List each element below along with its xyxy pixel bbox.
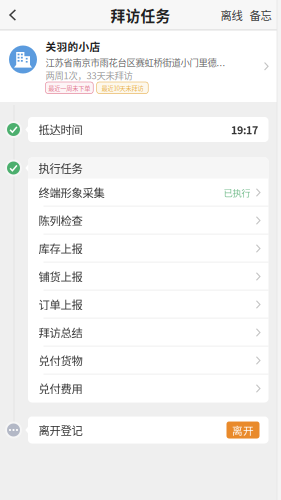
button[interactable]: 兑付费用 (28, 374, 268, 402)
staticText: 抵达时间 (38, 121, 82, 138)
button[interactable]: 兑付货物 (28, 346, 268, 374)
button[interactable]: 关羽的小店 (0, 31, 281, 102)
button[interactable]: 陈列检查 (28, 206, 268, 234)
staticText: 铺货上报 (38, 268, 82, 285)
staticText: 离开 (232, 422, 254, 438)
button[interactable]: 铺货上报 (28, 262, 268, 290)
button[interactable]: 离线 (217, 0, 246, 30)
staticText: 订单上报 (38, 296, 82, 313)
staticText: 最近一周未下单 (48, 83, 90, 92)
staticText: 已执行 (223, 186, 250, 199)
button[interactable]: 终端形象采集 (28, 178, 268, 206)
staticText: 终端形象采集 (38, 184, 104, 201)
staticText: 库存上报 (38, 240, 82, 257)
staticText: 19:17 (231, 122, 258, 137)
button[interactable]: 订单上报 (28, 290, 268, 318)
staticText: 拜访任务 (110, 4, 170, 26)
button[interactable]: 拜访总结 (28, 318, 268, 346)
staticText: 兑付货物 (38, 352, 82, 369)
staticText: 最近10天未拜访 (101, 83, 143, 92)
button[interactable]: 库存上报 (28, 234, 268, 262)
staticText: 离开登记 (38, 422, 82, 438)
staticText: 兑付费用 (38, 380, 82, 397)
button[interactable]: 离开 (226, 421, 259, 438)
staticText: 执行任务 (38, 160, 82, 176)
staticText: 备忘 (249, 7, 271, 23)
staticText: 两周1次，33天未拜访 (45, 68, 132, 82)
staticText: 江苏省南京市雨花台区赛虹桥街道小门里德... (45, 55, 225, 69)
button[interactable]: 备忘 (246, 0, 275, 30)
staticText: 陈列检查 (38, 212, 82, 229)
button[interactable]: 返回 (0, 0, 27, 30)
staticText: 离线 (220, 7, 242, 23)
staticText: 拜访总结 (38, 324, 82, 341)
staticText: 关羽的小店 (45, 38, 100, 54)
